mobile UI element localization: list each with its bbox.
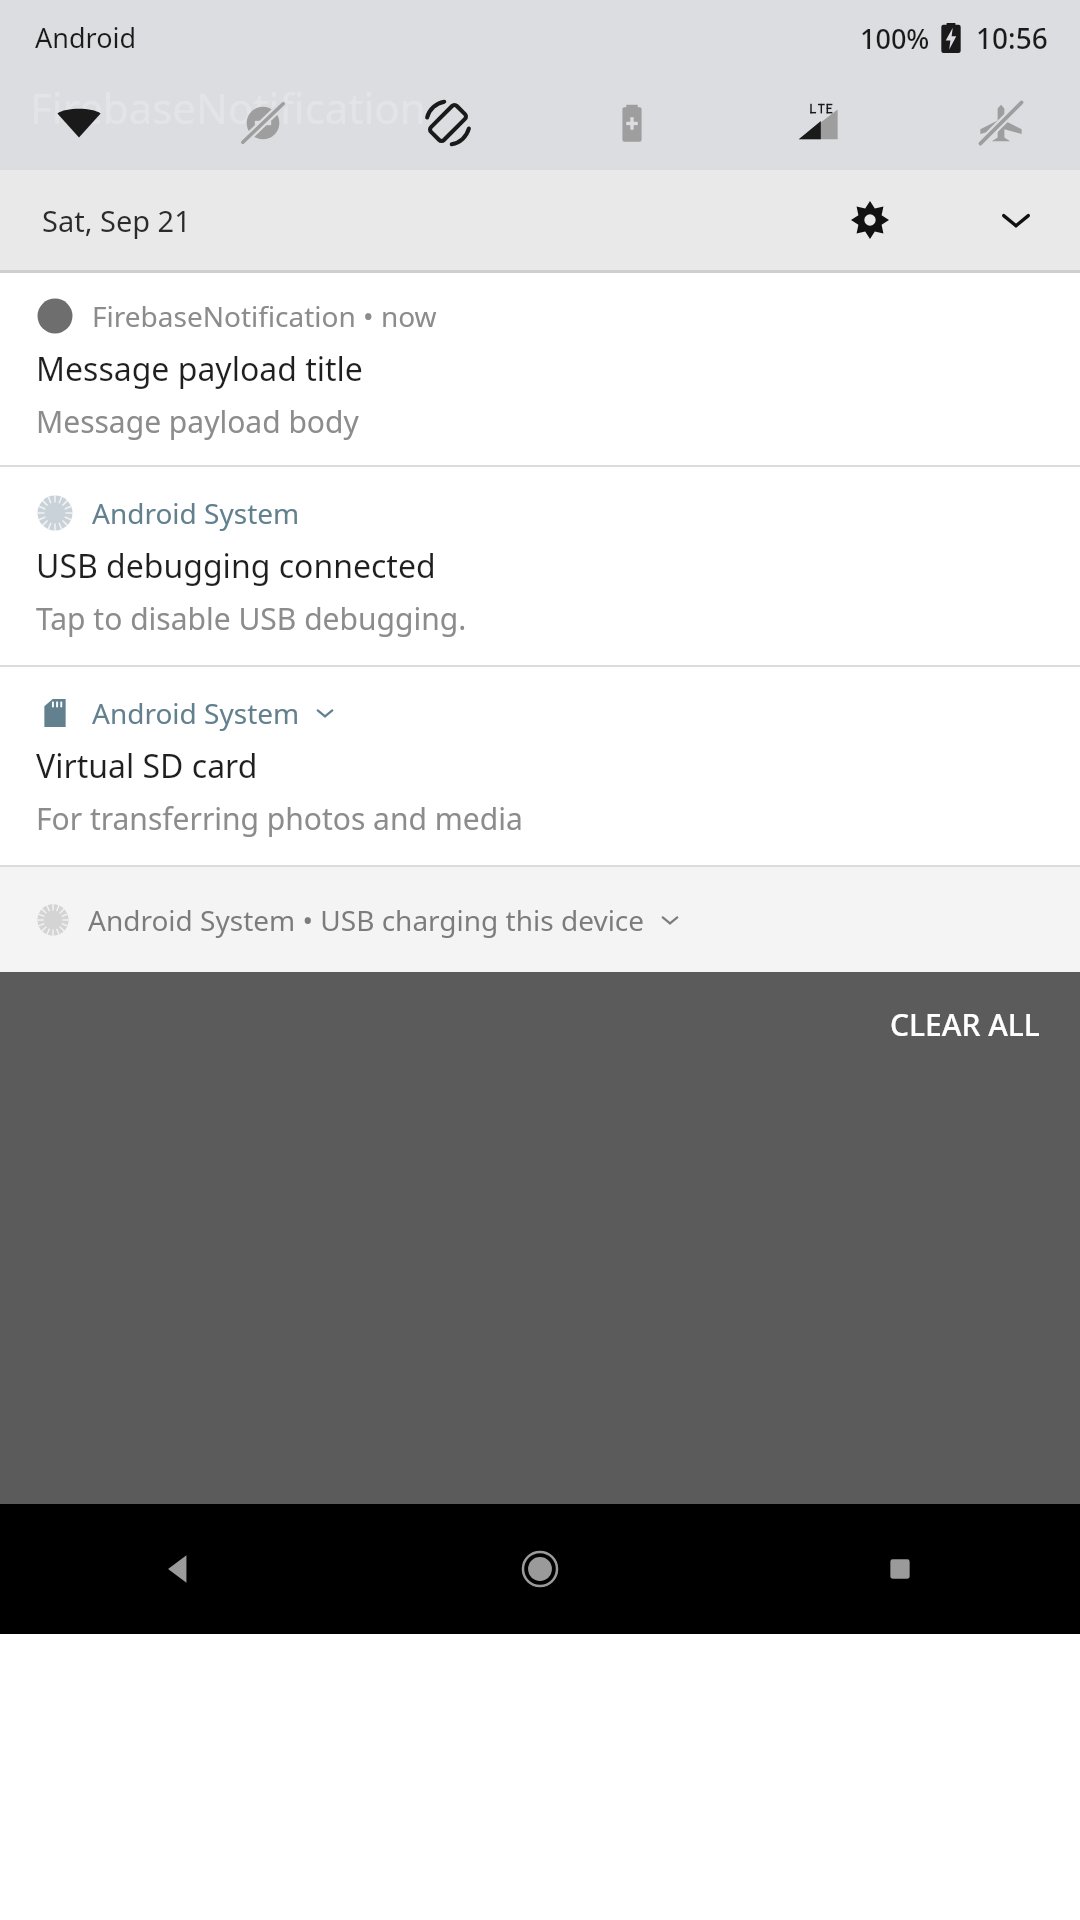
button[interactable]: Android System [0, 667, 1080, 865]
staticText: Sat, Sep 21 [42, 201, 191, 240]
button[interactable]: Wi-Fi [48, 92, 110, 154]
staticText: Android [35, 19, 137, 56]
button[interactable]: Do not disturb [232, 92, 294, 154]
button[interactable]: Auto rotate [417, 92, 479, 154]
staticText: FirebaseNotification • now [92, 297, 437, 335]
button[interactable]: Android System [0, 467, 1080, 665]
button[interactable]: Back [0, 1504, 360, 1634]
staticText: Message payload title [36, 347, 363, 391]
button[interactable]: Settings [830, 180, 910, 260]
staticText: Virtual SD card [36, 744, 258, 788]
staticText: FirebaseNotification [30, 79, 426, 136]
button[interactable]: Battery saver [601, 92, 663, 154]
button[interactable]: FirebaseNotification • now [0, 273, 1080, 465]
button[interactable]: CLEAR ALL [868, 986, 1062, 1063]
staticText: USB debugging connected [36, 544, 436, 588]
staticText: Message payload body [36, 401, 359, 442]
staticText: Android System [92, 494, 300, 532]
staticText: Android System [92, 694, 300, 732]
button[interactable]: Android System • USB charging this devic… [0, 867, 1080, 972]
button[interactable]: Mobile data LTE [786, 92, 848, 154]
staticText: CLEAR ALL [890, 1004, 1040, 1045]
staticText: 10:56 [976, 19, 1048, 57]
button[interactable]: Expand quick settings [976, 180, 1056, 260]
staticText: 100% [860, 20, 930, 57]
staticText: Tap to disable USB debugging. [36, 598, 467, 639]
staticText: For transferring photos and media [36, 798, 523, 839]
button[interactable]: Airplane mode [970, 92, 1032, 154]
button[interactable]: Home [360, 1504, 720, 1634]
button[interactable]: Recents [720, 1504, 1080, 1634]
staticText: Android System • USB charging this devic… [88, 901, 645, 939]
